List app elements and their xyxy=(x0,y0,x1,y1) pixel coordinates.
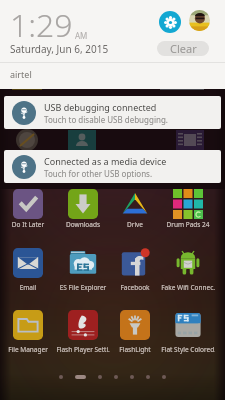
button[interactable]: File Manager xyxy=(1,307,55,353)
button[interactable]: Flat Style Colored.. xyxy=(161,307,215,353)
button[interactable]: Drum Pads 24 xyxy=(161,186,215,232)
button[interactable]: USB debugging connected xyxy=(4,96,221,129)
staticText: Connected as a media device xyxy=(44,155,167,167)
button[interactable]: Drive xyxy=(108,186,162,232)
staticText: Downloads xyxy=(56,220,110,229)
staticText: File Manager xyxy=(1,345,55,354)
button[interactable]: Email xyxy=(1,245,55,291)
button[interactable]: Flash Player Setti.. xyxy=(56,307,110,353)
button[interactable]: Clear xyxy=(157,41,209,56)
button[interactable]: ES File Explorer xyxy=(56,245,110,291)
staticText: Clear xyxy=(170,41,197,56)
button[interactable]: Facebook xyxy=(108,245,162,291)
staticText: ES File Explorer xyxy=(56,283,110,292)
staticText: Touch to disable USB debugging. xyxy=(44,114,168,125)
staticText: Facebook xyxy=(108,283,162,292)
staticText: Drive xyxy=(108,220,162,229)
staticText: FlashLight xyxy=(108,345,162,354)
staticText: airtel xyxy=(10,68,32,80)
staticText: Touch for other USB options. xyxy=(44,168,153,179)
button[interactable]: Connected as a media device xyxy=(4,150,221,183)
button[interactable]: Do It Later xyxy=(1,186,55,232)
staticText: AM xyxy=(75,30,88,41)
staticText: Email xyxy=(1,283,55,292)
button[interactable]: Settings xyxy=(159,11,181,33)
staticText: Do It Later xyxy=(1,220,55,229)
staticText: Fake Wifi Connec.. xyxy=(161,283,215,292)
staticText: 1:29 xyxy=(10,3,73,47)
button[interactable]: FlashLight xyxy=(108,307,162,353)
button[interactable]: Fake Wifi Connec.. xyxy=(161,245,215,291)
button[interactable]: Downloads xyxy=(56,186,110,232)
staticText: Flash Player Setti.. xyxy=(56,345,110,354)
staticText: Drum Pads 24 xyxy=(161,220,215,229)
staticText: Flat Style Colored.. xyxy=(161,345,215,354)
staticText: Saturday, Jun 6, 2015 xyxy=(10,42,109,56)
staticText: USB debugging connected xyxy=(44,101,157,113)
button[interactable]: Profile xyxy=(189,10,210,31)
